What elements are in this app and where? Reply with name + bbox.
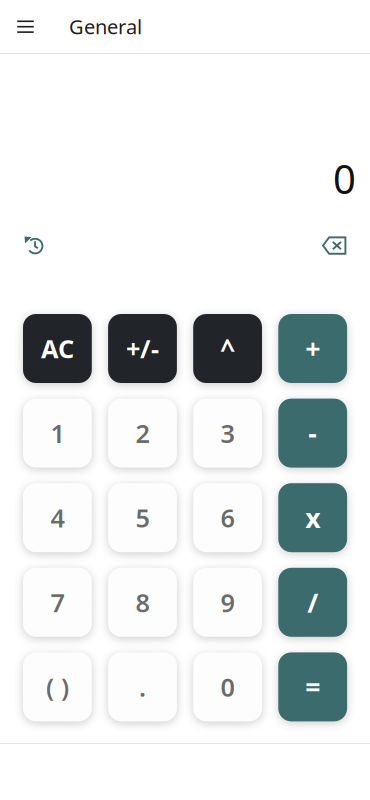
staticText: 6 xyxy=(221,501,235,534)
staticText: / xyxy=(307,585,318,620)
button[interactable]: 7 xyxy=(23,568,92,637)
button[interactable]: . xyxy=(108,652,177,721)
button[interactable]: ^ xyxy=(193,314,262,383)
staticText: 7 xyxy=(50,585,64,619)
button[interactable]: Menu xyxy=(9,4,42,48)
button[interactable]: 1 xyxy=(23,399,92,468)
button[interactable]: 3 xyxy=(193,399,262,468)
staticText: 1 xyxy=(50,416,64,450)
staticText: 5 xyxy=(135,501,149,534)
staticText: 9 xyxy=(221,585,235,619)
staticText: 2 xyxy=(135,416,149,450)
staticText: - xyxy=(308,415,317,451)
staticText: 0 xyxy=(221,670,235,704)
staticText: General xyxy=(69,13,142,40)
button[interactable]: = xyxy=(278,652,347,721)
button[interactable]: x xyxy=(278,483,347,552)
button[interactable]: 4 xyxy=(23,483,92,552)
button[interactable]: / xyxy=(278,568,347,637)
button[interactable]: 5 xyxy=(108,483,177,552)
button[interactable]: 8 xyxy=(108,568,177,637)
staticText: +/- xyxy=(126,332,159,365)
button[interactable]: Delete xyxy=(318,232,350,259)
button[interactable]: History xyxy=(20,232,47,259)
staticText: ^ xyxy=(220,331,235,366)
button[interactable]: +/- xyxy=(108,314,177,383)
button[interactable]: - xyxy=(278,399,347,468)
staticText: AC xyxy=(41,332,74,365)
button[interactable]: 9 xyxy=(193,568,262,637)
staticText: 3 xyxy=(221,416,235,450)
staticText: x xyxy=(305,500,320,535)
staticText: 4 xyxy=(50,501,64,534)
button[interactable]: 6 xyxy=(193,483,262,552)
staticText: = xyxy=(305,669,320,705)
button[interactable]: 0 xyxy=(193,652,262,721)
button[interactable]: ( ) xyxy=(23,652,92,721)
staticText: ( ) xyxy=(46,670,69,704)
staticText: + xyxy=(305,331,320,366)
button[interactable]: + xyxy=(278,314,347,383)
staticText: 0 xyxy=(333,152,356,205)
staticText: 8 xyxy=(135,585,149,619)
staticText: . xyxy=(139,670,146,704)
button[interactable]: 2 xyxy=(108,399,177,468)
button[interactable]: AC xyxy=(23,314,92,383)
